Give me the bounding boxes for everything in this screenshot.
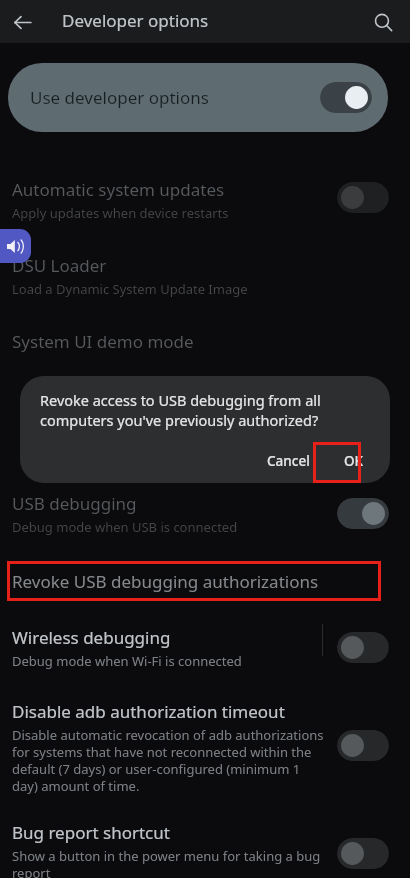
staticText: Debug mode when Wi-Fi is connected bbox=[12, 652, 242, 670]
button[interactable]: Off bbox=[337, 730, 389, 761]
button[interactable]: Wireless debugging bbox=[0, 626, 410, 670]
button[interactable]: Revoke USB debugging authorizations bbox=[0, 562, 410, 600]
staticText: Bug report shortcut bbox=[12, 821, 170, 844]
button[interactable]: DSU Loader bbox=[0, 254, 410, 298]
staticText: Disable adb authorization timeout bbox=[12, 700, 285, 723]
button[interactable]: Back bbox=[6, 6, 38, 38]
button[interactable]: Automatic system updates bbox=[0, 178, 410, 222]
button[interactable]: On bbox=[320, 82, 372, 113]
button[interactable]: Off bbox=[337, 182, 389, 213]
staticText: Use developer options bbox=[30, 86, 209, 109]
button[interactable]: OK bbox=[328, 443, 380, 479]
staticText: Cancel bbox=[267, 452, 310, 470]
staticText: OK bbox=[344, 452, 364, 470]
button[interactable]: System UI demo mode bbox=[12, 330, 410, 353]
staticText: DSU Loader bbox=[12, 254, 107, 277]
button[interactable]: Search bbox=[367, 6, 399, 38]
button[interactable]: USB debugging bbox=[0, 492, 410, 536]
staticText: Debug mode when USB is connected bbox=[12, 518, 238, 536]
staticText: Load a Dynamic System Update Image bbox=[12, 280, 248, 298]
staticText: Developer options bbox=[62, 9, 209, 32]
button[interactable]: On bbox=[337, 498, 389, 529]
button[interactable]: Bug report shortcut bbox=[12, 821, 324, 878]
button[interactable]: Use developer options bbox=[8, 63, 388, 132]
staticText: Wireless debugging bbox=[12, 626, 171, 649]
staticText: Automatic system updates bbox=[12, 178, 225, 201]
staticText: USB debugging bbox=[12, 492, 137, 515]
staticText: Revoke USB debugging authorizations bbox=[12, 570, 319, 593]
staticText: Disable automatic revocation of adb auth… bbox=[12, 726, 324, 795]
staticText: Apply updates when device restarts bbox=[12, 204, 229, 222]
button[interactable]: Off bbox=[337, 838, 389, 869]
button[interactable]: Off bbox=[337, 632, 389, 663]
button[interactable]: Volume bbox=[0, 229, 31, 263]
staticText: Revoke access to USB debugging from all … bbox=[40, 390, 352, 430]
button[interactable]: Cancel bbox=[253, 443, 324, 479]
staticText: Show a button in the power menu for taki… bbox=[12, 847, 324, 878]
button[interactable]: Disable adb authorization timeout bbox=[12, 700, 324, 795]
